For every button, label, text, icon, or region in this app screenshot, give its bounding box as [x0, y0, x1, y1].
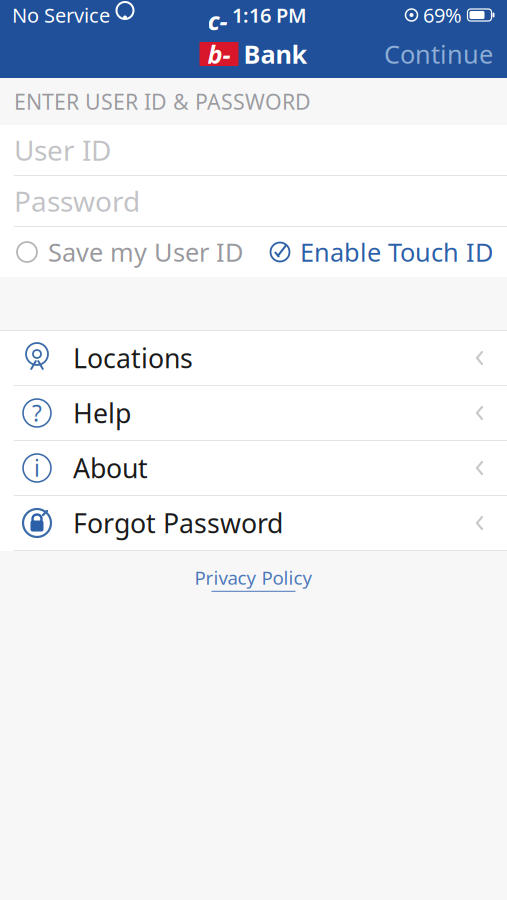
staticText: About	[73, 450, 148, 486]
staticText: 69%	[423, 2, 462, 28]
staticText: Help	[73, 395, 131, 431]
button[interactable]: i	[0, 441, 507, 496]
button[interactable]: Continue	[370, 32, 507, 76]
button[interactable]: Privacy Policy	[174, 551, 332, 602]
staticText: cbb	[207, 3, 230, 104]
staticText: 1:16 PM	[232, 2, 307, 28]
staticText: Continue	[384, 37, 493, 71]
button[interactable]: Locations	[0, 331, 507, 386]
button[interactable]: Forgot Password	[0, 496, 507, 551]
button[interactable]: ?	[0, 386, 507, 441]
staticText: Password	[14, 182, 140, 220]
staticText: ?	[32, 398, 42, 428]
button[interactable]: Enable Touch ID	[268, 227, 507, 277]
staticText: Privacy Policy	[194, 565, 312, 590]
staticText: User ID	[14, 131, 111, 169]
staticText: Forgot Password	[73, 505, 283, 541]
staticText: No Service	[12, 2, 110, 28]
staticText: Save my User ID	[48, 235, 243, 269]
staticText: i	[34, 453, 40, 483]
staticText: Bank	[243, 37, 307, 71]
button[interactable]: Save my User ID	[0, 227, 243, 277]
staticText: Locations	[73, 340, 193, 376]
staticText: ENTER USER ID & PASSWORD	[14, 87, 311, 116]
staticText: Enable Touch ID	[300, 235, 493, 269]
